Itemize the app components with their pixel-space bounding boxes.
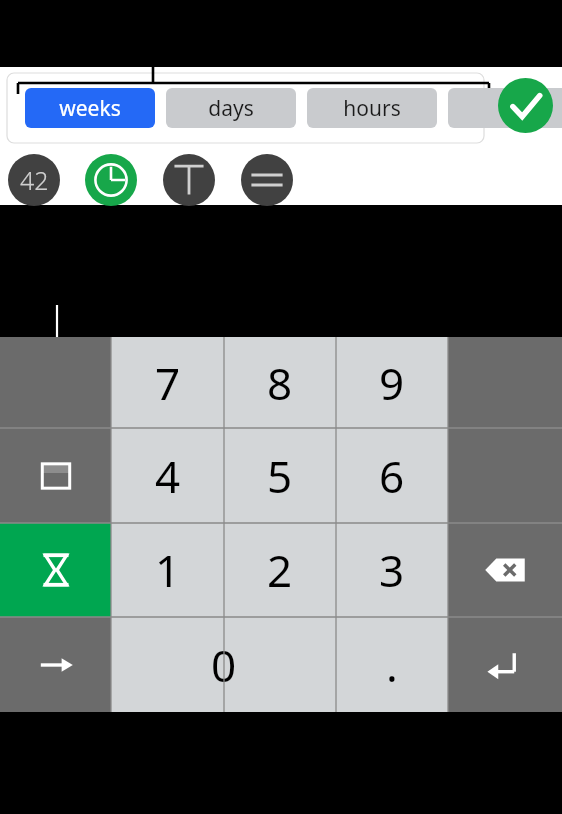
staticText: m <box>503 94 523 123</box>
staticText: 6 <box>379 446 405 506</box>
button[interactable]: Duration <box>0 523 111 617</box>
button[interactable]: Text <box>163 154 215 206</box>
button[interactable]: Confirm <box>498 78 553 133</box>
button[interactable]: 5 <box>224 428 336 523</box>
button[interactable]: 2 <box>224 523 336 617</box>
button[interactable]: . <box>336 617 448 712</box>
button[interactable]: Number <box>8 154 60 206</box>
button[interactable]: 6 <box>336 428 448 523</box>
button[interactable]: weeks <box>25 88 155 128</box>
staticText: 0 <box>211 635 237 695</box>
button[interactable]: 7 <box>111 337 224 428</box>
staticText: 7 <box>155 353 181 413</box>
staticText: weeks <box>59 94 121 123</box>
button[interactable]: Menu <box>241 154 293 206</box>
staticText: 42 <box>20 163 49 197</box>
button[interactable]: m <box>448 88 562 128</box>
button[interactable]: 0 <box>111 617 336 712</box>
staticText: 3 <box>379 540 405 600</box>
button[interactable]: Enter <box>448 617 562 712</box>
staticText: 5 <box>267 446 293 506</box>
button[interactable]: 4 <box>111 428 224 523</box>
button[interactable]: 8 <box>224 337 336 428</box>
staticText: 1 <box>155 540 181 600</box>
button[interactable]: 9 <box>336 337 448 428</box>
button[interactable]: Backspace <box>448 523 562 617</box>
staticText: . <box>386 635 398 695</box>
staticText: hours <box>343 94 401 123</box>
staticText: 4 <box>155 446 181 506</box>
button[interactable]: Next <box>0 617 111 712</box>
button[interactable]: days <box>166 88 296 128</box>
staticText: 9 <box>379 353 405 413</box>
button[interactable]: Clock <box>85 154 137 206</box>
button[interactable]: Date <box>0 428 111 523</box>
button[interactable]: 3 <box>336 523 448 617</box>
button[interactable]: 1 <box>111 523 224 617</box>
staticText: days <box>208 94 254 123</box>
staticText: 8 <box>267 353 293 413</box>
staticText: 2 <box>267 540 293 600</box>
button[interactable]: hours <box>307 88 437 128</box>
